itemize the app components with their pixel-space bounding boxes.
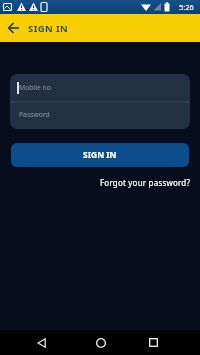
button[interactable]: Mobile no	[10, 74, 190, 101]
button[interactable]	[141, 330, 166, 355]
staticText: Mobile no	[19, 83, 51, 92]
button[interactable]	[88, 330, 113, 355]
staticText: 5:26	[179, 2, 194, 12]
staticText: SIGN IN	[28, 22, 69, 35]
button[interactable]: SIGN IN	[11, 143, 189, 167]
button[interactable]	[29, 330, 54, 355]
button[interactable]: Forgot your password?	[100, 177, 191, 188]
button[interactable]: Password	[10, 103, 190, 129]
staticText: SIGN IN	[83, 149, 117, 161]
staticText: Password	[19, 110, 50, 119]
button[interactable]	[0, 14, 28, 42]
